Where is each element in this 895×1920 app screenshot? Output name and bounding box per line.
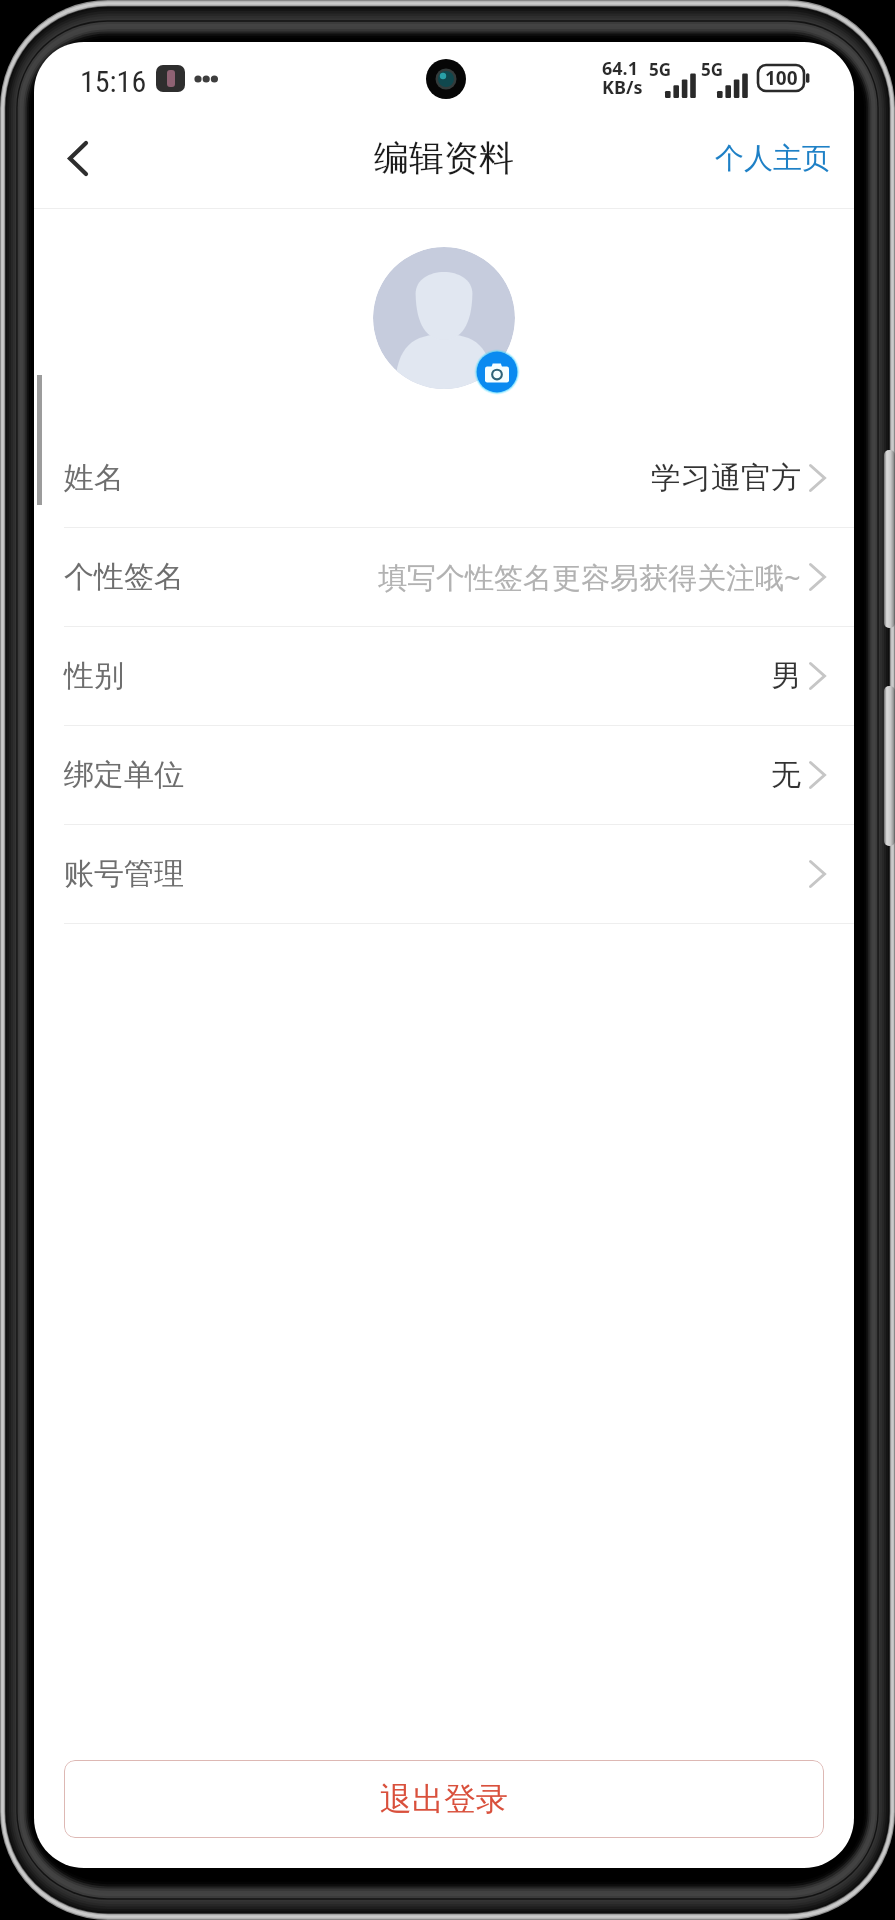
staticText: 个人主页 [715,140,831,177]
staticText: 账号管理 [64,855,184,893]
staticText: 编辑资料 [374,136,514,180]
button[interactable]: Back [34,116,118,200]
staticText: 5G [649,58,672,81]
staticText: 无 [771,756,801,794]
staticText: 退出登录 [380,1779,508,1819]
button[interactable]: 性别 [34,627,854,726]
staticText: 学习通官方 [651,459,801,497]
staticText: 性别 [64,657,124,695]
staticText: 64.1 KB/s [602,56,643,99]
staticText: 5G [701,58,724,81]
staticText: 个性签名 [64,558,184,596]
staticText: 男 [771,657,801,695]
button[interactable]: 账号管理 [34,825,854,924]
button[interactable]: 退出登录 [64,1760,824,1838]
button[interactable]: 个人主页 [692,120,854,197]
button[interactable]: 姓名 [34,429,854,528]
button[interactable]: Change photo [474,349,520,395]
staticText: 填写个性签名更容易获得关注哦~ [378,557,801,597]
staticText: 100 [765,65,798,91]
staticText: 姓名 [64,459,124,497]
button[interactable]: 绑定单位 [34,726,854,825]
button[interactable]: Change avatar [373,247,515,389]
staticText: 绑定单位 [64,756,184,794]
staticText: 15:16 [80,64,147,99]
button[interactable]: 个性签名 [34,528,854,627]
